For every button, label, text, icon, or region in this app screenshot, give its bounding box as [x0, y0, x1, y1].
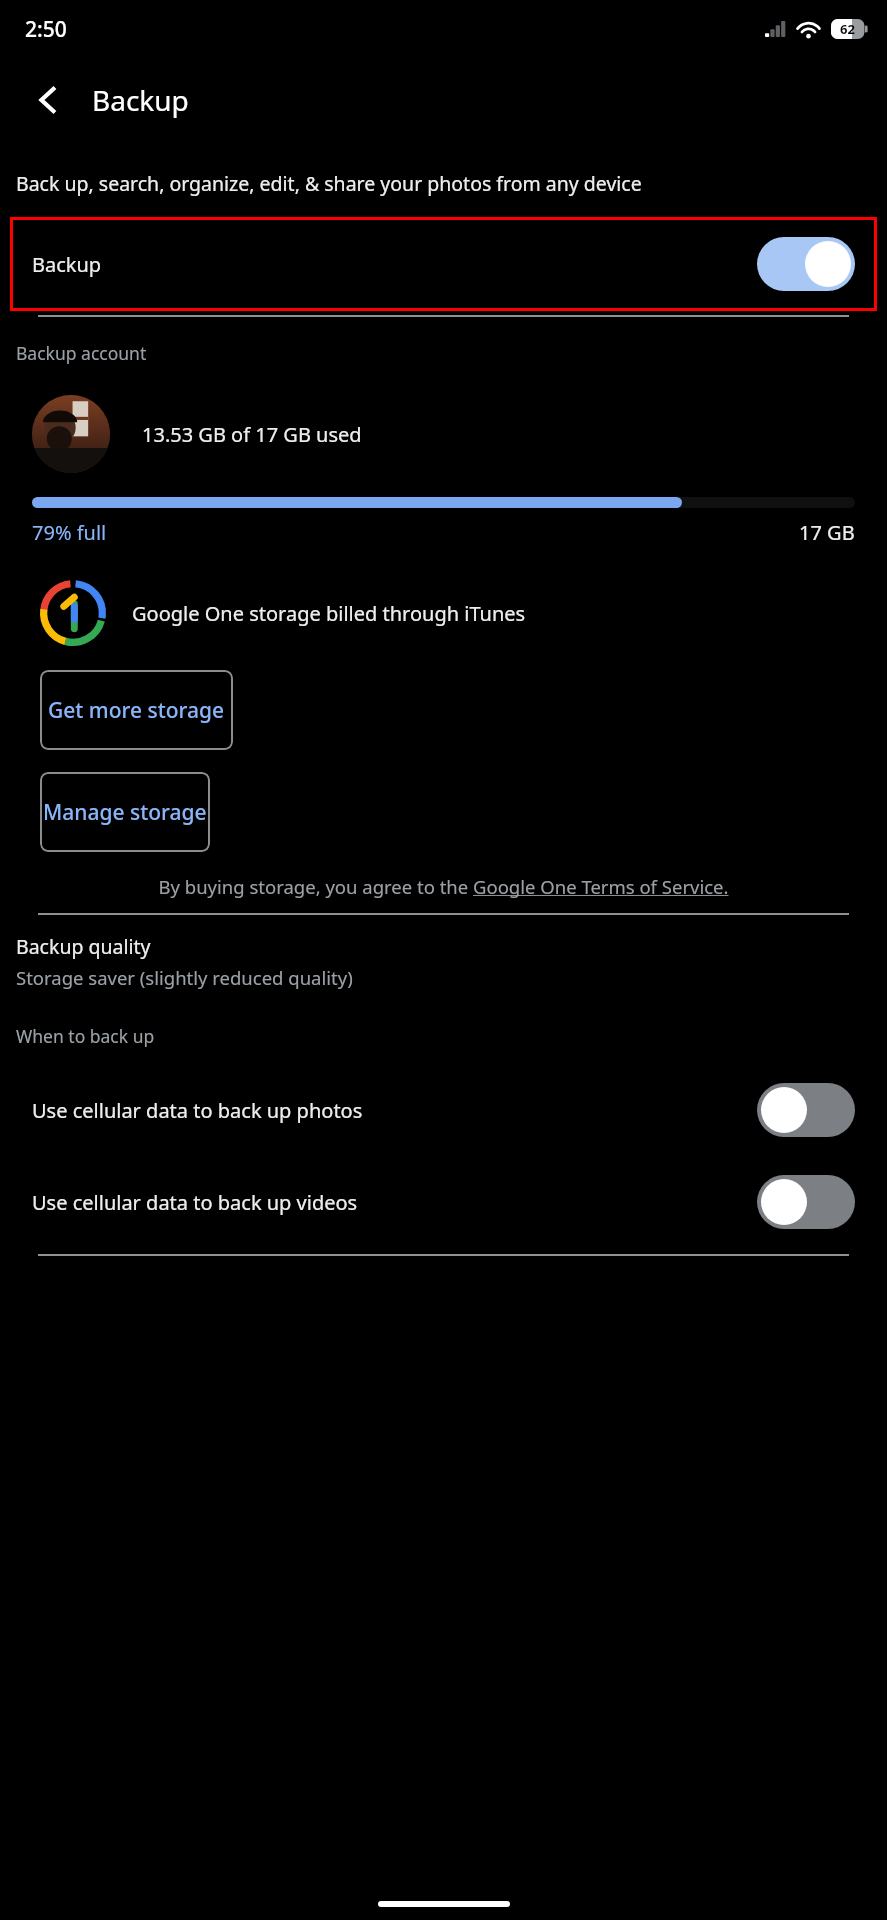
button[interactable]: Back	[18, 70, 78, 130]
staticText: Use cellular data to back up photos	[32, 1097, 757, 1124]
staticText: When to back up	[16, 1024, 155, 1048]
staticText: Get more storage	[48, 696, 225, 725]
staticText: Storage saver (slightly reduced quality)	[16, 965, 353, 990]
button[interactable]: Google One storage billed through iTunes	[0, 580, 887, 646]
staticText: Manage storage	[43, 798, 207, 827]
button[interactable]: Manage storage	[40, 772, 210, 852]
staticText: By buying storage, you agree to the Goog…	[34, 874, 853, 899]
staticText: Backup	[92, 81, 189, 119]
button[interactable]: Get more storage	[40, 670, 233, 750]
staticText: 17 GB	[799, 519, 855, 546]
button[interactable]: Backup	[10, 217, 877, 311]
button[interactable]: Use cellular data to back up videos	[0, 1164, 887, 1240]
staticText: 2:50	[25, 15, 67, 44]
button[interactable]: 13.53 GB of 17 GB used	[0, 395, 887, 473]
staticText: 13.53 GB of 17 GB used	[142, 421, 362, 448]
staticText: Back up, search, organize, edit, & share…	[16, 170, 642, 197]
staticText: 79% full	[32, 519, 107, 546]
staticText: 62	[840, 20, 855, 38]
staticText: Google One storage billed through iTunes	[132, 600, 526, 627]
button[interactable]: Backup quality	[0, 931, 887, 992]
staticText: Use cellular data to back up videos	[32, 1189, 757, 1216]
staticText: Backup account	[16, 341, 147, 365]
staticText: Backup quality	[16, 933, 151, 960]
button[interactable]: Use cellular data to back up photos	[0, 1072, 887, 1148]
staticText: Backup	[32, 251, 102, 278]
